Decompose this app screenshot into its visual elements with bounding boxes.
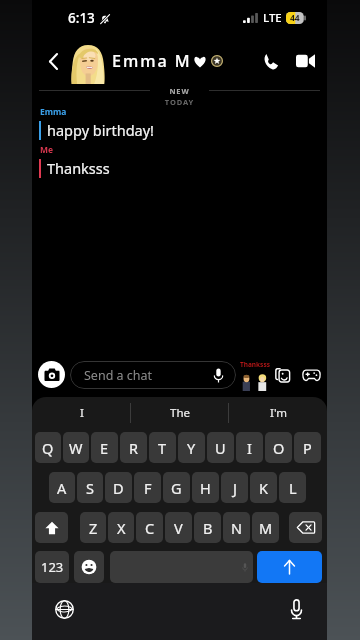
button[interactable]: S bbox=[77, 472, 103, 503]
staticText: H bbox=[200, 478, 211, 498]
button[interactable]: X bbox=[108, 512, 134, 543]
button[interactable]: Z bbox=[80, 512, 106, 543]
staticText: X bbox=[117, 518, 126, 538]
button[interactable]: T bbox=[149, 432, 176, 463]
button[interactable]: D bbox=[105, 472, 132, 503]
staticText: I'm bbox=[270, 405, 287, 421]
button[interactable]: Voice call bbox=[254, 45, 286, 77]
button[interactable]: Send a chat bbox=[70, 361, 236, 389]
staticText: happy birthday! bbox=[47, 120, 154, 140]
button[interactable]: E bbox=[91, 432, 118, 463]
button[interactable]: Change keyboard language bbox=[50, 595, 78, 623]
button[interactable]: The bbox=[131, 397, 229, 428]
button[interactable]: 123 bbox=[35, 551, 69, 583]
staticText: N bbox=[231, 518, 243, 538]
button[interactable]: I bbox=[236, 432, 263, 463]
button[interactable]: Video call bbox=[289, 45, 321, 77]
staticText: 44 bbox=[290, 12, 300, 24]
staticText: Y bbox=[187, 438, 196, 458]
staticText: O bbox=[273, 438, 285, 458]
button[interactable]: F bbox=[134, 472, 161, 503]
staticText: P bbox=[303, 438, 312, 458]
button[interactable]: U bbox=[207, 432, 234, 463]
staticText: E bbox=[100, 438, 109, 458]
staticText: F bbox=[144, 478, 152, 498]
button[interactable]: Q bbox=[35, 432, 61, 463]
button[interactable]: W bbox=[63, 432, 89, 463]
button[interactable]: Stickers bbox=[270, 362, 296, 388]
button[interactable]: Back bbox=[36, 44, 70, 78]
button[interactable]: N bbox=[223, 512, 250, 543]
button[interactable]: I'm bbox=[229, 397, 327, 428]
button[interactable]: Shift bbox=[35, 512, 68, 543]
button[interactable]: K bbox=[250, 472, 277, 503]
staticText: I bbox=[247, 438, 252, 458]
button[interactable]: Send bbox=[257, 551, 322, 583]
button[interactable]: Camera bbox=[38, 361, 65, 388]
button[interactable]: J bbox=[221, 472, 248, 503]
staticText: NEW bbox=[32, 86, 327, 96]
staticText: J bbox=[233, 478, 237, 498]
button[interactable]: Backspace bbox=[289, 512, 322, 543]
button[interactable]: H bbox=[192, 472, 219, 503]
button[interactable]: Voice input bbox=[282, 595, 310, 623]
staticText: Thanksss bbox=[47, 158, 110, 178]
button[interactable]: I bbox=[32, 397, 131, 428]
button[interactable]: G bbox=[163, 472, 190, 503]
staticText: Z bbox=[89, 518, 98, 538]
staticText: I bbox=[80, 405, 84, 421]
button[interactable]: Emma M bbox=[71, 38, 223, 84]
staticText: U bbox=[215, 438, 226, 458]
staticText: Me bbox=[40, 144, 54, 156]
staticText: Q bbox=[42, 438, 54, 458]
staticText: Thanksss bbox=[240, 360, 270, 369]
staticText: TODAY bbox=[32, 97, 327, 107]
button[interactable]: M bbox=[252, 512, 279, 543]
button[interactable]: L bbox=[279, 472, 306, 503]
staticText: Emma bbox=[40, 106, 67, 118]
staticText: C bbox=[145, 518, 155, 538]
staticText: LTE bbox=[263, 10, 282, 26]
staticText: Send a chat bbox=[84, 367, 153, 384]
staticText: G bbox=[171, 478, 182, 498]
button[interactable]: O bbox=[265, 432, 292, 463]
button[interactable]: Y bbox=[178, 432, 205, 463]
button[interactable]: A bbox=[49, 472, 75, 503]
staticText: The bbox=[170, 405, 190, 421]
staticText: M bbox=[259, 518, 273, 538]
staticText: D bbox=[113, 478, 124, 498]
button[interactable]: Emoji bbox=[74, 551, 104, 583]
staticText: 6:13 bbox=[68, 9, 95, 27]
button[interactable]: V bbox=[165, 512, 192, 543]
staticText: 123 bbox=[41, 558, 64, 576]
button[interactable]: C bbox=[136, 512, 163, 543]
staticText: T bbox=[158, 438, 167, 458]
button[interactable]: Suggested sticker Thanksss bbox=[240, 359, 270, 391]
button[interactable]: B bbox=[194, 512, 221, 543]
staticText: S bbox=[86, 478, 94, 498]
staticText: L bbox=[289, 478, 297, 498]
button[interactable]: Games bbox=[298, 362, 324, 388]
staticText: A bbox=[57, 478, 67, 498]
button[interactable]: P bbox=[294, 432, 321, 463]
staticText: V bbox=[174, 518, 183, 538]
staticText: R bbox=[129, 438, 139, 458]
button[interactable]: R bbox=[120, 432, 147, 463]
staticText: K bbox=[259, 478, 268, 498]
staticText: B bbox=[203, 518, 213, 538]
staticText: Emma M bbox=[112, 50, 192, 72]
staticText: W bbox=[69, 438, 83, 458]
